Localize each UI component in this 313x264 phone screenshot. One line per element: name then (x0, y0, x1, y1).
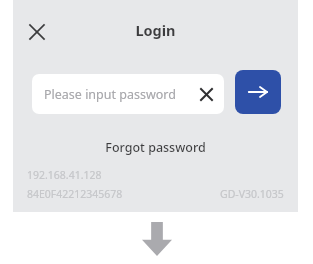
staticText: Please input password (44, 86, 176, 103)
button[interactable]: Scroll down (134, 220, 180, 258)
staticText: Login (135, 20, 176, 40)
staticText: 192.168.41.128 (27, 168, 102, 182)
staticText: GD-V30.1035 (220, 187, 284, 201)
staticText: Forgot password (105, 139, 206, 156)
button[interactable]: Submit (235, 70, 281, 114)
button[interactable]: Forgot password (95, 136, 216, 159)
button[interactable]: Clear password (197, 85, 215, 103)
button[interactable]: Close (21, 16, 53, 48)
staticText: 84E0F42212345678 (27, 187, 123, 201)
button[interactable]: Please input password (32, 74, 224, 114)
